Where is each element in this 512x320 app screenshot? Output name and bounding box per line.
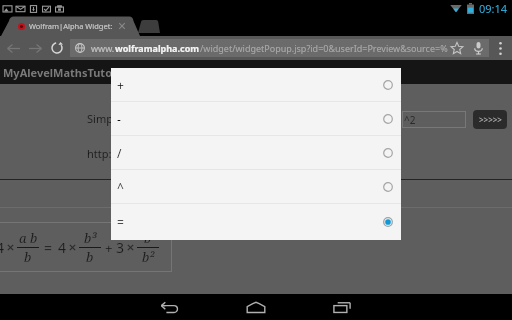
- staticText: 4: [0, 238, 5, 257]
- staticText: /: [117, 145, 122, 161]
- button[interactable]: -: [111, 102, 401, 136]
- button[interactable]: =: [111, 204, 401, 240]
- button[interactable]: >>>>>: [473, 110, 507, 129]
- staticText: Simp: [87, 111, 113, 126]
- staticText: a b: [19, 229, 38, 247]
- button[interactable]: Bookmark: [447, 39, 467, 57]
- button[interactable]: Back: [142, 294, 198, 320]
- staticText: 4: [58, 238, 67, 257]
- staticText: 09:14: [479, 1, 508, 16]
- staticText: MyAlevelMathsTutor: [3, 65, 117, 80]
- staticText: /widget/widgetPopup.jsp?id=0&userId=Prev…: [200, 42, 448, 54]
- staticText: =: [117, 214, 124, 230]
- button[interactable]: www.: [70, 39, 489, 57]
- staticText: =: [44, 238, 53, 257]
- staticText: >>>>>: [479, 114, 502, 125]
- staticText: b³: [84, 229, 97, 247]
- staticText: b²: [142, 248, 155, 266]
- button[interactable]: Wolfram|Alpha Widget:: [0, 16, 140, 36]
- staticText: http:: [87, 146, 112, 161]
- staticText: wolframalpha.com: [115, 42, 200, 54]
- staticText: ^: [117, 179, 124, 195]
- button[interactable]: Home: [228, 294, 284, 320]
- button[interactable]: More options: [489, 36, 511, 60]
- button[interactable]: ^: [111, 170, 401, 204]
- button[interactable]: Recent apps: [314, 294, 370, 320]
- staticText: ^2: [404, 113, 416, 127]
- button[interactable]: /: [111, 136, 401, 170]
- staticText: Wolfram|Alpha Widget:: [29, 21, 113, 31]
- staticText: +: [105, 239, 113, 257]
- staticText: 3: [116, 238, 125, 257]
- button[interactable]: +: [111, 68, 401, 102]
- button[interactable]: Voice search: [467, 39, 489, 57]
- staticText: +: [117, 77, 124, 93]
- staticText: b: [86, 248, 94, 266]
- button[interactable]: Back: [2, 36, 24, 60]
- button[interactable]: Reload: [46, 36, 68, 60]
- button[interactable]: Forward: [24, 36, 46, 60]
- staticText: www.: [91, 42, 115, 54]
- staticText: b: [24, 248, 32, 266]
- staticText: -: [117, 111, 121, 127]
- staticText: b: [144, 229, 152, 247]
- button[interactable]: Close tab: [118, 22, 126, 30]
